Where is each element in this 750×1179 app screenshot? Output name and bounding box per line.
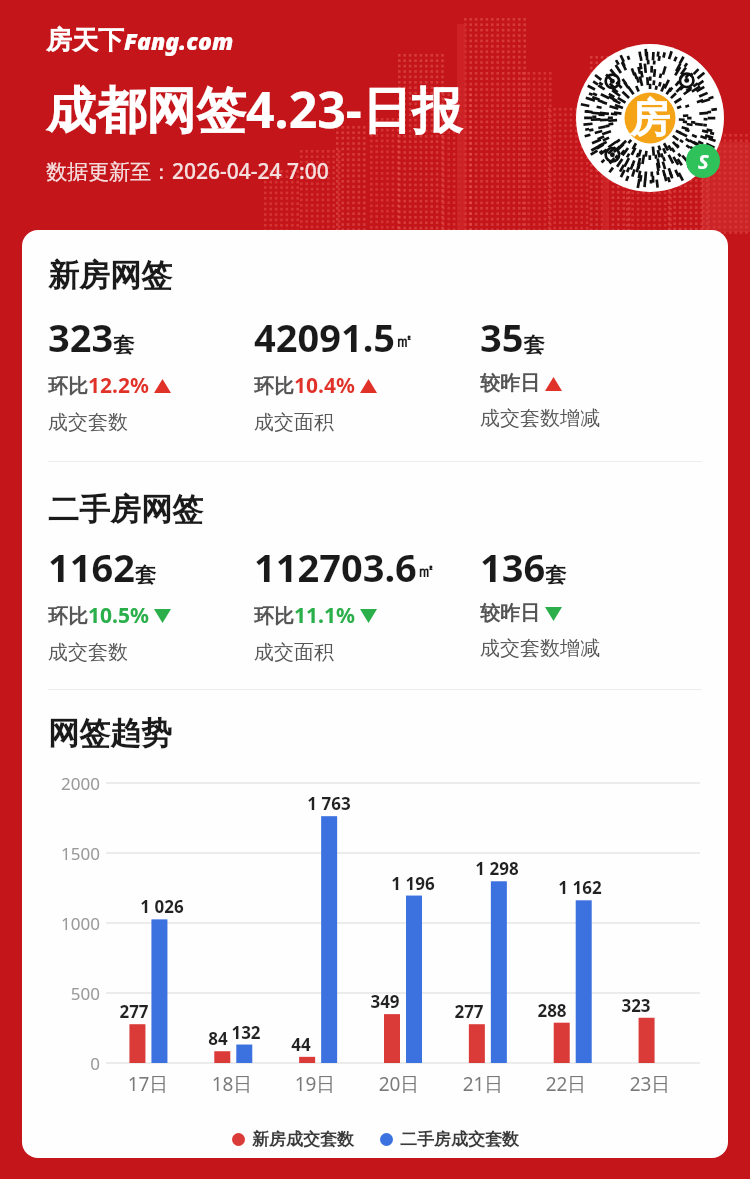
staticText: 环比12.2%: [48, 371, 149, 400]
staticText: 84: [183, 1027, 253, 1050]
staticText: 136套: [480, 541, 567, 593]
button[interactable]: 网签趋势: [48, 714, 172, 753]
staticText: 44: [266, 1033, 336, 1056]
staticText: 二手房成交套数: [400, 1129, 519, 1150]
staticText: 349: [350, 990, 420, 1013]
button[interactable]: 112703.6㎡: [254, 541, 435, 665]
button[interactable]: 扫码查看小程序: [576, 44, 724, 192]
button[interactable]: 二手房网签: [48, 490, 203, 529]
staticText: 新房成交套数: [252, 1129, 354, 1150]
staticText: 房天下: [46, 24, 124, 57]
staticText: 成交套数增减: [480, 406, 600, 431]
staticText: 18日: [197, 1071, 267, 1097]
button[interactable]: 新房网签: [48, 256, 172, 295]
staticText: 成交面积: [254, 410, 334, 435]
staticText: 42091.5㎡: [254, 311, 414, 363]
staticText: Fang.com: [124, 25, 234, 56]
staticText: 277: [434, 1000, 504, 1023]
staticText: 0: [48, 1052, 100, 1075]
staticText: 成交套数: [48, 410, 128, 435]
staticText: 23日: [615, 1071, 685, 1097]
button[interactable]: 二手房成交套数: [380, 1129, 519, 1150]
staticText: 房: [630, 93, 670, 143]
staticText: 17日: [113, 1071, 183, 1097]
staticText: 1 196: [373, 872, 453, 895]
staticText: 1500: [48, 842, 100, 865]
staticText: 成交套数增减: [480, 636, 600, 661]
button[interactable]: 42091.5㎡: [254, 311, 414, 435]
staticText: 19日: [280, 1071, 350, 1097]
staticText: 323: [601, 994, 671, 1017]
button[interactable]: 35套: [480, 311, 600, 431]
staticText: 22日: [531, 1071, 601, 1097]
staticText: 500: [48, 982, 100, 1005]
staticText: 1 298: [457, 857, 537, 880]
staticText: 环比11.1%: [254, 601, 355, 630]
staticText: 1 026: [122, 895, 202, 918]
staticText: 较昨日: [480, 371, 540, 396]
button[interactable]: 新房成交套数: [232, 1129, 354, 1150]
staticText: 成交套数: [48, 640, 128, 665]
staticText: 1 162: [540, 876, 620, 899]
staticText: 较昨日: [480, 601, 540, 626]
staticText: 1000: [48, 912, 100, 935]
staticText: 2000: [48, 772, 100, 795]
staticText: 环比10.5%: [48, 601, 149, 630]
staticText: 成都网签4.23-日报: [46, 75, 462, 143]
staticText: S: [698, 148, 709, 175]
button[interactable]: 136套: [480, 541, 600, 661]
staticText: 277: [99, 1000, 169, 1023]
staticText: 20日: [364, 1071, 434, 1097]
staticText: 1 763: [289, 792, 369, 815]
staticText: 35套: [480, 311, 545, 363]
staticText: 323套: [48, 311, 135, 363]
staticText: 环比10.4%: [254, 371, 355, 400]
staticText: 288: [517, 999, 587, 1022]
staticText: 成交面积: [254, 640, 334, 665]
staticText: 132: [206, 1021, 286, 1044]
button[interactable]: 323套: [48, 311, 171, 435]
staticText: 112703.6㎡: [254, 541, 435, 593]
staticText: 数据更新至：2026-04-24 7:00: [46, 157, 329, 186]
button[interactable]: 房天下: [46, 24, 234, 57]
staticText: 21日: [448, 1071, 518, 1097]
button[interactable]: 1162套: [48, 541, 171, 665]
staticText: 1162套: [48, 541, 156, 593]
